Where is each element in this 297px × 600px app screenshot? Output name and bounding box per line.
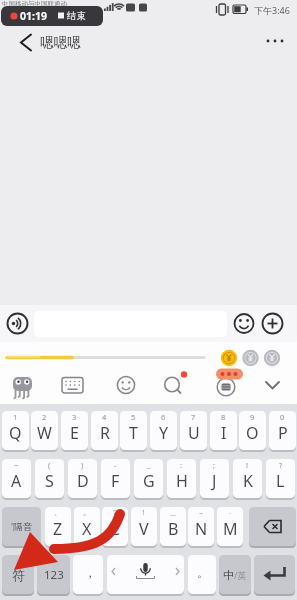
button[interactable]: 符 <box>2 555 34 594</box>
button[interactable]: 0 <box>269 411 296 450</box>
staticText: C <box>110 518 121 540</box>
button[interactable]: 嗯嗯嗯 <box>40 34 81 51</box>
staticText: Q <box>9 422 22 444</box>
staticText: 中 <box>223 568 234 582</box>
staticText: ! <box>246 460 249 470</box>
staticText: J <box>212 470 217 492</box>
button[interactable]: 8 <box>210 411 237 450</box>
staticText: ; <box>213 460 216 470</box>
button[interactable]: - <box>101 459 130 498</box>
button[interactable] <box>258 28 290 54</box>
button[interactable]: _ <box>134 459 163 498</box>
staticText: G <box>143 470 155 492</box>
staticText: ? <box>279 460 283 470</box>
staticText: Y <box>159 422 169 444</box>
staticText: 下午3:46 <box>254 4 290 16</box>
staticText: A <box>11 470 22 492</box>
button[interactable]: ? <box>266 459 295 498</box>
staticText: ( <box>48 460 51 470</box>
staticText: ？ <box>111 508 119 517</box>
staticText: S <box>45 470 54 492</box>
button[interactable] <box>258 372 292 402</box>
staticText: B <box>168 518 179 540</box>
button[interactable]: 中 <box>219 555 251 594</box>
button[interactable]: 9 <box>239 411 266 450</box>
staticText: 。 <box>83 508 91 517</box>
staticText: 4 <box>102 412 107 422</box>
button[interactable]: ！ <box>131 507 157 546</box>
button[interactable] <box>6 311 30 337</box>
staticText: 6 <box>161 412 166 422</box>
button[interactable]: 2 <box>31 411 58 450</box>
staticText: : <box>180 460 183 470</box>
staticText: /英 <box>234 569 247 581</box>
staticText: '隔音 <box>11 520 33 533</box>
button[interactable]: 4 <box>91 411 118 450</box>
staticText: E <box>70 422 79 444</box>
button[interactable]: … <box>160 507 186 546</box>
staticText: - <box>114 460 117 470</box>
staticText: O <box>246 422 259 444</box>
button[interactable] <box>107 555 184 594</box>
staticText: T <box>129 422 138 444</box>
button[interactable] <box>14 28 40 54</box>
button[interactable] <box>249 507 296 546</box>
button[interactable] <box>188 555 216 594</box>
button[interactable]: 。 <box>74 507 100 546</box>
staticText: R <box>100 422 110 444</box>
button[interactable] <box>210 372 244 402</box>
staticText: 0 <box>280 412 285 422</box>
button[interactable]: 123 <box>37 555 70 594</box>
staticText: K <box>243 470 253 492</box>
staticText: 中国移动与中国联通动 <box>2 0 67 8</box>
button[interactable]: '隔音 <box>2 507 41 546</box>
button[interactable] <box>261 311 284 337</box>
button[interactable]: ) <box>68 459 97 498</box>
staticText: ~ <box>14 460 19 470</box>
button[interactable] <box>8 372 42 402</box>
staticText: F <box>111 470 120 492</box>
staticText: 。 <box>197 565 209 580</box>
staticText: 1 <box>13 412 18 422</box>
button[interactable]: 5 <box>120 411 147 450</box>
staticText: W <box>37 422 52 444</box>
button[interactable]: ？ <box>102 507 128 546</box>
button[interactable] <box>112 372 146 402</box>
button[interactable]: 3 <box>61 411 88 450</box>
button[interactable] <box>254 555 295 594</box>
button[interactable]: · <box>217 507 243 546</box>
staticText: 5 <box>131 412 136 422</box>
staticText: U <box>188 422 200 444</box>
button[interactable] <box>58 372 92 402</box>
staticText: I <box>221 422 227 444</box>
staticText: 7 <box>191 412 196 422</box>
staticText: 3 <box>72 412 77 422</box>
staticText: ！ <box>140 508 148 517</box>
button[interactable] <box>233 311 255 337</box>
staticText: 符 <box>12 567 25 583</box>
staticText: … <box>170 508 176 518</box>
button[interactable]: : <box>167 459 196 498</box>
staticText: 9 <box>250 412 255 422</box>
button[interactable]: ~ <box>188 507 214 546</box>
button[interactable]: ! <box>233 459 262 498</box>
staticText: ~ <box>199 508 204 518</box>
button[interactable]: ( <box>35 459 64 498</box>
button[interactable] <box>73 555 103 594</box>
button[interactable]: 6 <box>150 411 177 450</box>
button[interactable]: 、 <box>45 507 71 546</box>
staticText: 结束 <box>67 10 86 22</box>
staticText: 、 <box>54 508 62 517</box>
staticText: N <box>195 518 208 540</box>
staticText: 8 <box>221 412 226 422</box>
button[interactable]: 1 <box>2 411 29 450</box>
staticText: 01:19 <box>20 9 47 23</box>
button[interactable]: ; <box>200 459 229 498</box>
staticText: Z <box>53 518 63 540</box>
button[interactable] <box>160 372 194 402</box>
button[interactable]: 7 <box>180 411 207 450</box>
button[interactable]: ~ <box>2 459 31 498</box>
staticText: P <box>278 422 288 444</box>
staticText: 2 <box>42 412 47 422</box>
